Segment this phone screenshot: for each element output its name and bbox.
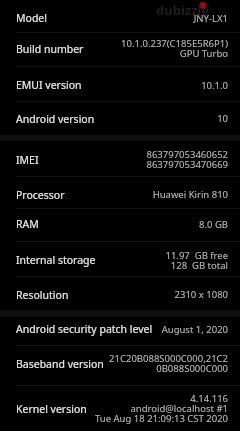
staticText: Huawei Kirin 810 (152, 188, 228, 201)
button[interactable]: Internal storage (0, 242, 240, 276)
staticText: RAM (16, 217, 39, 231)
staticText: Internal storage (16, 253, 96, 267)
staticText: IMEI (16, 153, 39, 167)
button[interactable]: Android security patch level (0, 317, 240, 345)
staticText: 21C20B088S000C000,21C2 0B088S000C000 (109, 352, 228, 375)
staticText: 11.97 GB free 128 GB total (165, 249, 228, 272)
staticText: Model (16, 11, 47, 25)
button[interactable]: Resolution (0, 277, 240, 310)
staticText: Build number (16, 42, 84, 56)
staticText: 10.1.0 (201, 79, 228, 92)
button[interactable]: EMUI version (0, 67, 240, 101)
staticText: 4.14.116 android@localhost #1 Tue Aug 18… (95, 392, 228, 425)
staticText: EMUI version (16, 78, 82, 92)
staticText: Android security patch level (16, 322, 153, 336)
staticText: Resolution (16, 288, 69, 302)
button[interactable]: Android version (0, 102, 240, 135)
button[interactable]: Model (0, 0, 240, 32)
button[interactable]: Kernel version (0, 386, 240, 431)
button[interactable]: IMEI (0, 141, 240, 176)
staticText: August 1, 2020 (161, 323, 228, 336)
staticText: dubizzle (156, 1, 210, 19)
button[interactable]: Build number (0, 33, 240, 66)
staticText: 8.0 GB (199, 218, 228, 231)
staticText: 10.1.0.237(C185E5R6P1) GPU Turbo (121, 37, 228, 60)
staticText: Android version (16, 112, 95, 126)
staticText: Baseband version (16, 357, 104, 371)
staticText: Processor (16, 188, 65, 202)
button[interactable]: RAM (0, 209, 240, 241)
staticText: 863797053460652 863797053470669 (146, 148, 228, 171)
staticText: JNY-LX1 (193, 12, 228, 25)
staticText: 2310 x 1080 (174, 288, 228, 301)
staticText: 10 (217, 112, 228, 125)
button[interactable]: Baseband version (0, 346, 240, 385)
staticText: Kernel version (16, 402, 87, 416)
button[interactable]: Processor (0, 177, 240, 208)
